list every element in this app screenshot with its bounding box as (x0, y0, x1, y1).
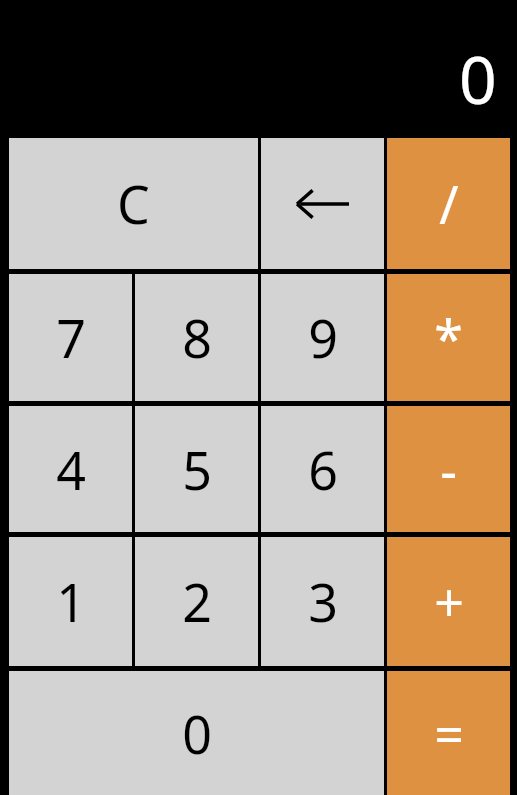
staticText: 7 (56, 302, 86, 373)
staticText: 6 (308, 434, 338, 505)
staticText: 0 (459, 33, 497, 123)
staticText: 1 (56, 566, 86, 637)
button[interactable]: 4 (9, 406, 132, 532)
button[interactable]: 6 (261, 406, 384, 532)
staticText: * (434, 302, 463, 373)
button[interactable]: + (387, 537, 510, 666)
staticText: - (440, 434, 457, 505)
button[interactable]: 2 (135, 537, 258, 666)
staticText: 9 (308, 302, 338, 373)
button[interactable]: C (9, 138, 258, 269)
button[interactable]: 0 (9, 671, 384, 795)
staticText: C (117, 168, 150, 239)
button[interactable]: 7 (9, 274, 132, 401)
button[interactable]: Backspace (261, 138, 384, 269)
button[interactable]: 1 (9, 537, 132, 666)
button[interactable]: * (387, 274, 510, 401)
button[interactable]: 9 (261, 274, 384, 401)
button[interactable]: 5 (135, 406, 258, 532)
staticText: 5 (182, 434, 212, 505)
staticText: 2 (182, 566, 212, 637)
staticText: = (434, 698, 464, 769)
button[interactable]: / (387, 138, 510, 269)
button[interactable]: - (387, 406, 510, 532)
staticText: / (439, 168, 459, 239)
button[interactable]: 8 (135, 274, 258, 401)
staticText: 0 (182, 698, 212, 769)
button[interactable]: 3 (261, 537, 384, 666)
staticText: 8 (182, 302, 212, 373)
staticText: 3 (308, 566, 338, 637)
staticText: 4 (56, 434, 86, 505)
staticText: + (434, 566, 464, 637)
button[interactable]: = (387, 671, 510, 795)
